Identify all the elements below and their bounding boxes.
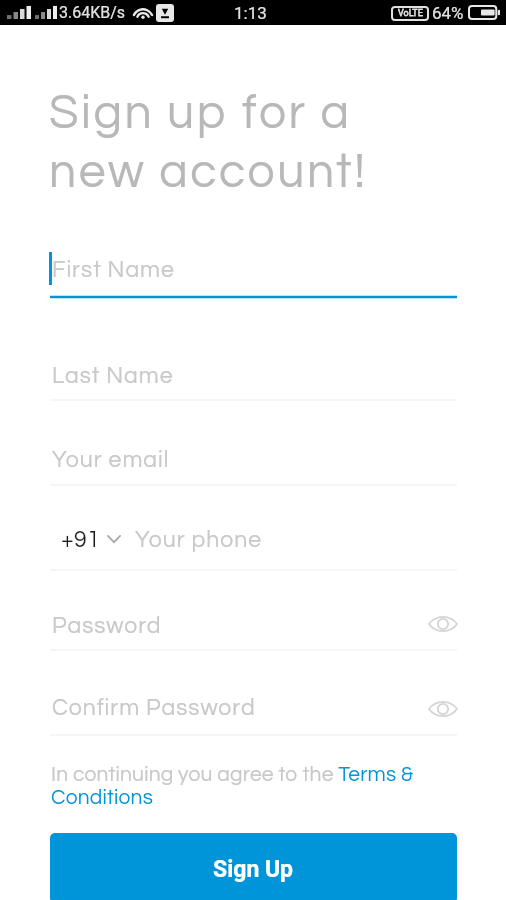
button[interactable]: Your email — [50, 433, 457, 487]
staticText: 1:13 — [234, 3, 267, 23]
staticText: In continuing you agree to the Terms & C… — [51, 764, 417, 808]
staticText: Sign Up — [213, 856, 294, 883]
staticText: Sign up for a new account! — [49, 89, 368, 197]
button[interactable]: Show password — [425, 606, 461, 642]
button[interactable]: Sign Up — [50, 833, 457, 900]
staticText: +91 — [61, 528, 100, 552]
button[interactable]: Show password — [425, 691, 461, 727]
staticText: First Name — [52, 258, 175, 282]
button[interactable]: Password — [50, 598, 457, 652]
staticText: 64% — [432, 3, 464, 23]
staticText: Confirm Password — [52, 696, 256, 720]
button[interactable]: Confirm Password — [50, 683, 457, 737]
staticText: Your email — [52, 448, 170, 472]
staticText: VoLTE — [398, 8, 423, 19]
staticText: Password — [52, 614, 162, 638]
button[interactable]: Last Name — [50, 348, 457, 402]
staticText: Last Name — [52, 364, 174, 388]
staticText: 3.64KB/s — [59, 3, 126, 22]
button[interactable]: First Name — [50, 245, 457, 299]
staticText: Your phone — [135, 528, 263, 552]
button[interactable]: +91 — [61, 528, 121, 552]
